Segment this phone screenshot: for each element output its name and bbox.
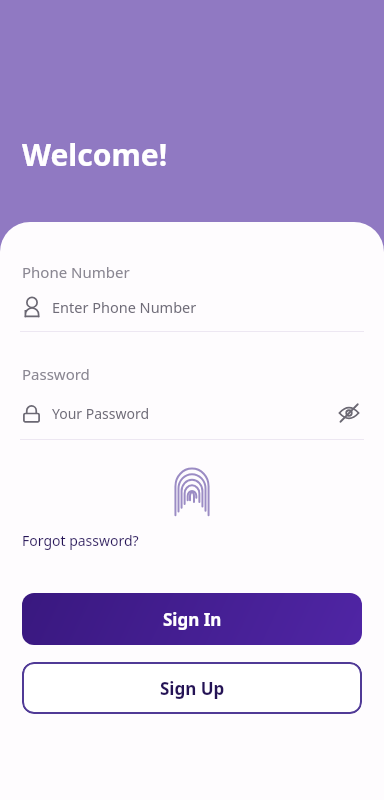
button[interactable]: Sign Up: [22, 662, 362, 714]
button[interactable]: Phone Number: [0, 262, 384, 317]
staticText: Sign Up: [160, 677, 225, 700]
button[interactable]: Sign in with fingerprint: [170, 473, 214, 517]
staticText: Password: [22, 364, 90, 384]
staticText: Sign In: [163, 608, 222, 631]
button[interactable]: Your Password: [22, 404, 336, 423]
button[interactable]: Show password: [336, 400, 362, 426]
button[interactable]: Sign In: [22, 593, 362, 645]
staticText: Forgot password?: [22, 531, 139, 550]
button[interactable]: Forgot password?: [22, 531, 139, 550]
staticText: Your Password: [52, 404, 150, 423]
staticText: Welcome!: [22, 134, 168, 175]
staticText: Phone Number: [22, 262, 130, 282]
staticText: Enter Phone Number: [52, 297, 197, 317]
